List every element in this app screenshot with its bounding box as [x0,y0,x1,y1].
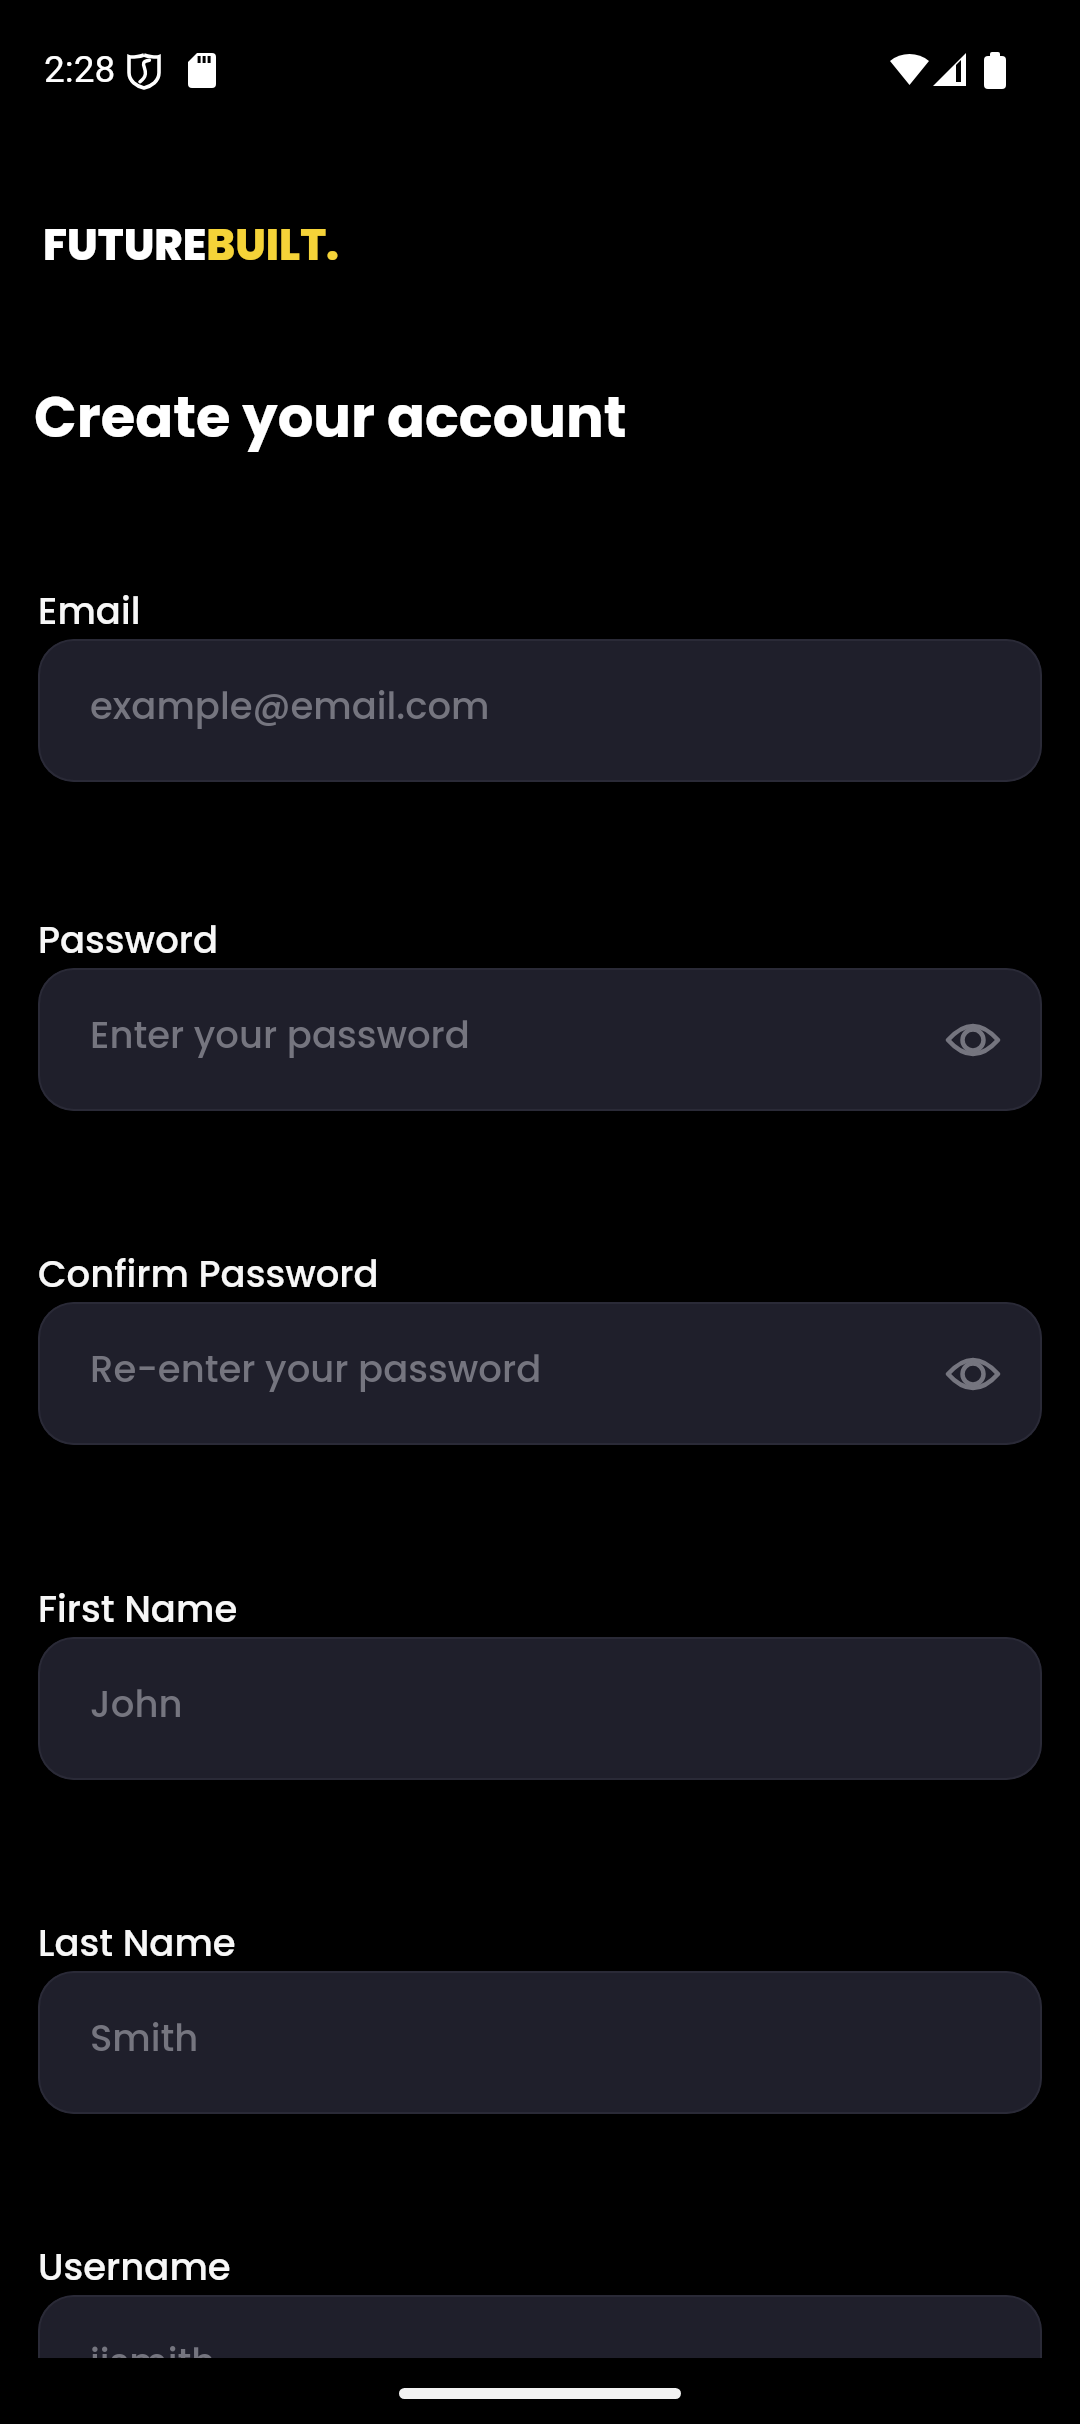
staticText: Create your account [34,378,627,456]
button[interactable]: Re-enter your password [38,1302,1042,1445]
staticText: 2:28 [44,48,116,91]
staticText: Smith [90,2012,199,2064]
staticText: Confirm Password [38,1248,379,1300]
button[interactable] [948,1022,998,1058]
staticText: Re-enter your password [90,1343,542,1395]
staticText: First Name [38,1583,238,1635]
button[interactable] [399,2388,681,2399]
button[interactable]: jjsmith [38,2295,1042,2424]
button[interactable]: Smith [38,1971,1042,2114]
button[interactable]: example@email.com [38,639,1042,782]
button[interactable] [948,1356,998,1392]
staticText: jjsmith [90,2336,216,2388]
staticText: FUTUREBUILT. [43,215,340,275]
staticText: Username [38,2241,231,2293]
button[interactable]: Enter your password [38,968,1042,1111]
staticText: example@email.com [90,680,490,732]
staticText: Enter your password [90,1009,470,1061]
button[interactable]: John [38,1637,1042,1780]
staticText: Email [38,585,141,637]
staticText: Password [38,914,219,966]
staticText: John [90,1678,183,1730]
staticText: Last Name [38,1917,236,1969]
